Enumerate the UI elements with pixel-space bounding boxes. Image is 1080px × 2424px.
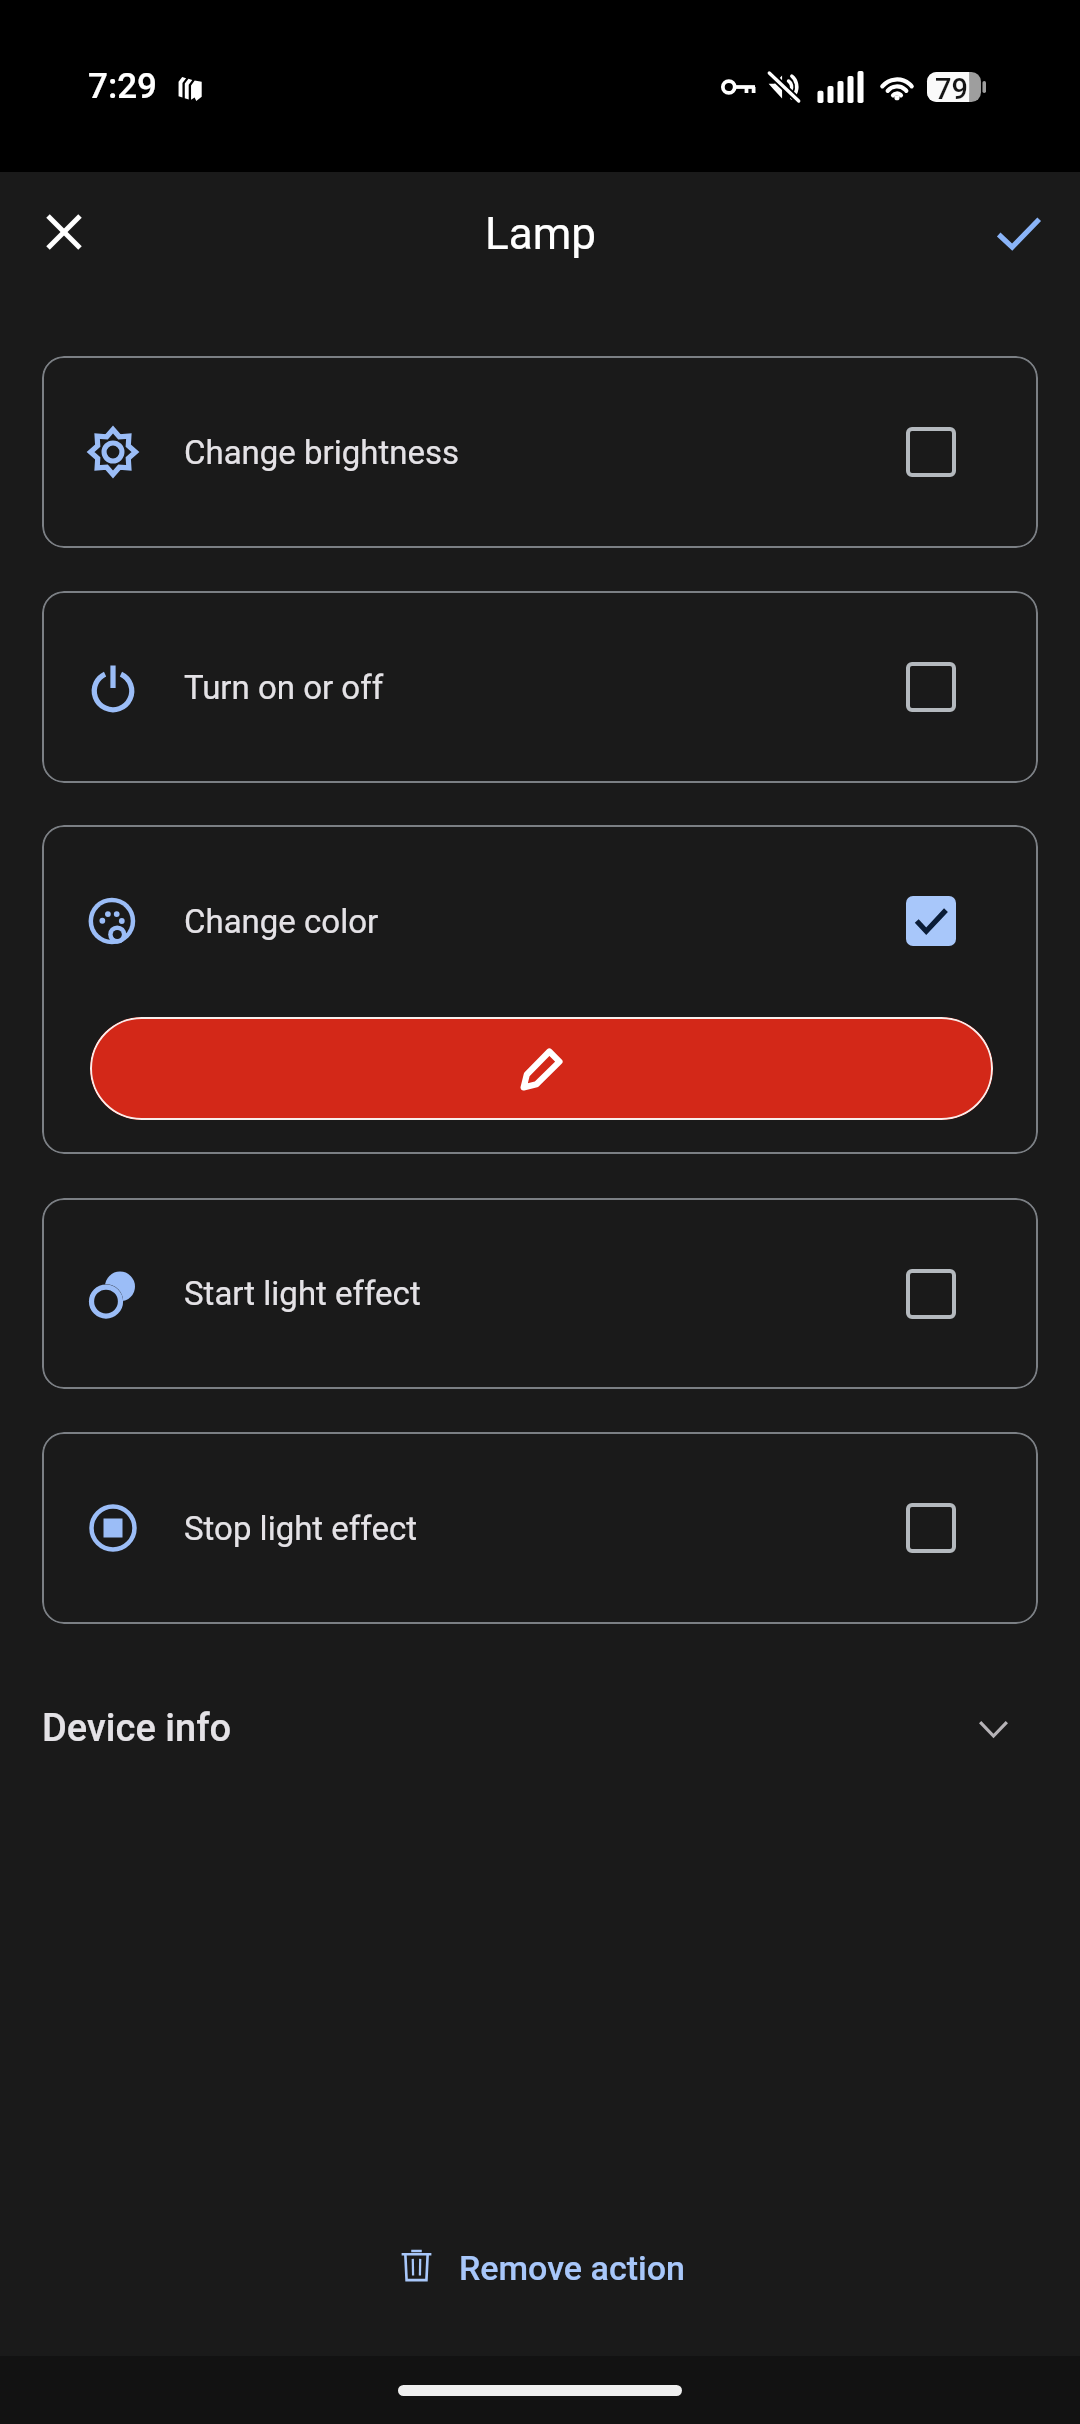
- button[interactable]: Edit color: [90, 1017, 993, 1120]
- staticText: Device info: [42, 1706, 232, 1751]
- button[interactable]: Disabled: [906, 427, 956, 477]
- button[interactable]: Change color: [42, 825, 1038, 1017]
- staticText: Remove action: [459, 2248, 686, 2288]
- button[interactable]: Change brightness: [42, 356, 1038, 548]
- staticText: Lamp: [485, 208, 596, 260]
- button[interactable]: Remove action: [370, 2238, 710, 2306]
- button[interactable]: Device info: [0, 1624, 1080, 1832]
- staticText: Stop light effect: [184, 1509, 417, 1548]
- staticText: 79: [935, 72, 968, 102]
- staticText: Change color: [184, 902, 379, 941]
- button[interactable]: Close: [26, 198, 102, 274]
- button[interactable]: Expand device info: [957, 1692, 1029, 1764]
- button[interactable]: Enabled: [906, 896, 956, 946]
- button[interactable]: Disabled: [906, 662, 956, 712]
- button[interactable]: Done: [980, 198, 1056, 274]
- staticText: Change brightness: [184, 433, 460, 472]
- button[interactable]: Disabled: [906, 1269, 956, 1319]
- staticText: Turn on or off: [184, 668, 384, 707]
- button[interactable]: Disabled: [906, 1503, 956, 1553]
- button[interactable]: Stop light effect: [42, 1432, 1038, 1624]
- button[interactable]: Turn on or off: [42, 591, 1038, 783]
- staticText: 7:29: [88, 66, 157, 107]
- staticText: Start light effect: [184, 1274, 421, 1313]
- button[interactable]: Start light effect: [42, 1198, 1038, 1389]
